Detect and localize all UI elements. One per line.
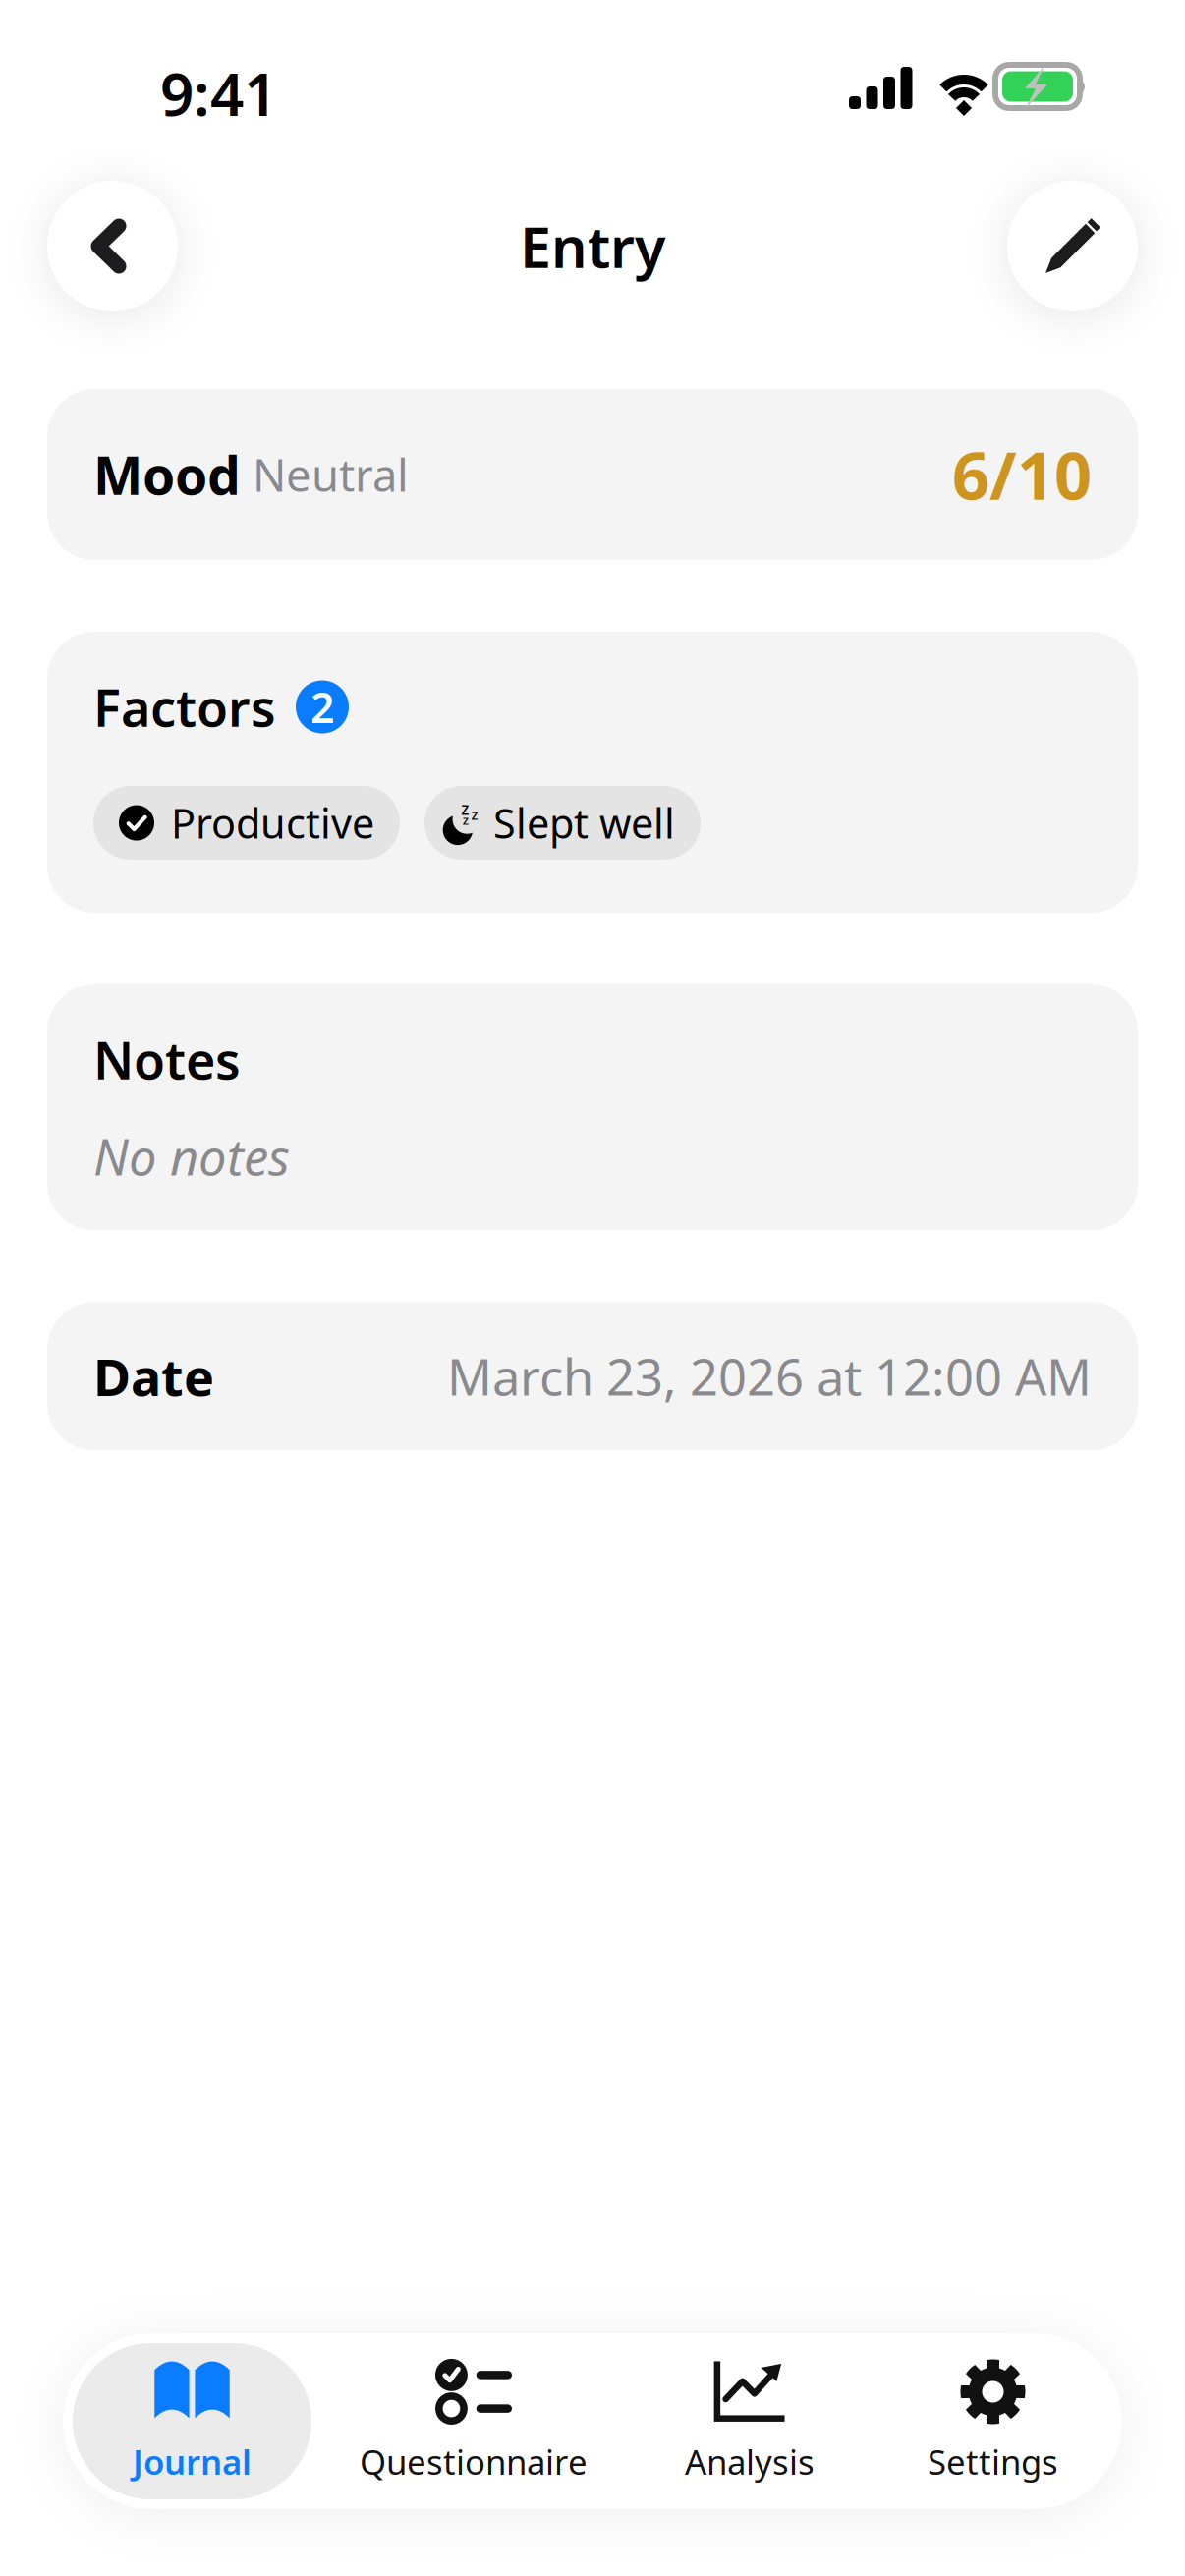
staticText: Settings (928, 2439, 1058, 2484)
staticText: March 23, 2026 at 12:00 AM (447, 1343, 1092, 1409)
button[interactable]: Back (47, 181, 178, 311)
staticText: Analysis (685, 2439, 815, 2484)
staticText: Slept well (493, 796, 675, 850)
button[interactable]: Analysis (636, 2343, 864, 2499)
staticText: No notes (93, 1123, 290, 1189)
staticText: z (463, 811, 468, 829)
staticText: Notes (93, 1026, 241, 1094)
staticText: Journal (133, 2439, 252, 2484)
staticText: z (471, 805, 478, 824)
staticText: Neutral (253, 445, 409, 504)
button[interactable]: Edit (1007, 181, 1138, 311)
staticText: Date (93, 1342, 214, 1410)
staticText: Mood (93, 440, 241, 509)
staticText: 2 (310, 679, 334, 735)
staticText: Factors (93, 673, 276, 741)
button[interactable]: Journal (73, 2343, 311, 2499)
staticText: 6/10 (952, 431, 1092, 518)
button[interactable]: Questionnaire (311, 2343, 636, 2499)
staticText: 9:41 (160, 54, 277, 132)
staticText: Entry (520, 209, 665, 283)
staticText: z (461, 797, 469, 820)
staticText: Questionnaire (360, 2439, 588, 2484)
staticText: Productive (171, 796, 374, 850)
button[interactable]: Settings (864, 2343, 1122, 2499)
